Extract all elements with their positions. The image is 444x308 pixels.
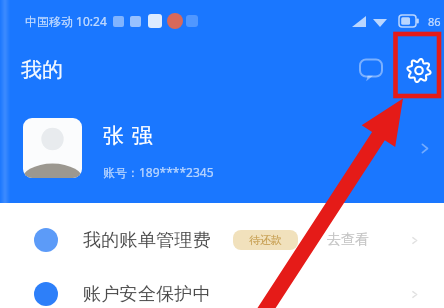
staticText: 我的账单管理费 [83,229,212,252]
staticText: 去查看 [327,231,369,249]
staticText: 我的 [21,57,63,83]
staticText: 待还款 [249,233,282,247]
button[interactable]: 我的账单管理费 [0,213,444,267]
button[interactable]: Settings [395,46,443,94]
staticText: 张 强 [103,121,155,150]
staticText: 86 [428,14,441,29]
staticText: 中国移动 10:24 [25,13,107,29]
button[interactable]: 账户安全保护中 [0,267,444,308]
staticText: 账户安全保护中 [83,283,212,306]
staticText: 账号：189****2345 [103,164,214,180]
button[interactable]: Messages [347,46,395,94]
